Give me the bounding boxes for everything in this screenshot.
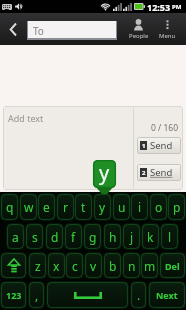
staticText: m <box>144 258 156 274</box>
button[interactable]: f <box>64 222 83 251</box>
button[interactable]: p <box>167 192 186 222</box>
staticText: w <box>24 199 34 215</box>
staticText: . <box>137 287 141 303</box>
button[interactable]: c <box>65 251 84 280</box>
staticText: u <box>118 199 126 215</box>
button[interactable]: r <box>56 192 75 222</box>
button[interactable]: s <box>25 222 44 251</box>
button[interactable]: To <box>27 21 117 40</box>
staticText: h <box>109 229 117 245</box>
staticText: i <box>138 199 142 215</box>
button[interactable]: Add text <box>4 107 133 189</box>
button[interactable]: e <box>37 192 56 222</box>
button[interactable]: h <box>103 222 122 251</box>
staticText: y <box>99 160 110 186</box>
button[interactable]: 1 <box>137 137 181 154</box>
staticText: e <box>43 199 50 215</box>
button[interactable]: x <box>47 251 66 280</box>
staticText: Next <box>156 289 178 301</box>
button[interactable]: d <box>45 222 64 251</box>
staticText: q <box>6 199 14 215</box>
button[interactable]: m <box>140 251 159 280</box>
staticText: Del <box>165 260 180 272</box>
staticText: k <box>147 229 154 245</box>
staticText: 2 <box>142 169 146 177</box>
button[interactable]: Back <box>0 13 26 45</box>
button[interactable]: Del <box>159 251 186 280</box>
staticText: 123 <box>6 289 22 301</box>
staticText: 12:53 <box>147 1 171 13</box>
staticText: Menu <box>159 32 176 40</box>
staticText: t <box>81 199 86 215</box>
staticText: Send <box>150 139 173 152</box>
staticText: PM <box>172 3 182 11</box>
button[interactable]: k <box>141 222 160 251</box>
button[interactable]: g <box>83 222 102 251</box>
staticText: y <box>99 199 106 215</box>
button[interactable]: , <box>28 280 45 310</box>
button[interactable]: u <box>112 192 131 222</box>
button[interactable]: q <box>0 192 19 222</box>
staticText: o <box>155 199 163 215</box>
staticText: j <box>130 229 134 245</box>
staticText: , <box>35 287 39 303</box>
staticText: People <box>129 32 149 40</box>
staticText: v <box>90 258 97 274</box>
button[interactable]: . <box>130 280 147 310</box>
staticText: To <box>33 24 44 38</box>
staticText: 1 <box>142 142 146 150</box>
staticText: r <box>63 199 68 215</box>
button[interactable]: b <box>103 251 122 280</box>
staticText: d <box>51 229 59 245</box>
staticText: c <box>72 258 78 274</box>
button[interactable]: n <box>122 251 141 280</box>
staticText: a <box>12 229 19 245</box>
staticText: Send <box>150 166 173 179</box>
staticText: n <box>128 258 136 274</box>
button[interactable]: 123 <box>0 280 27 310</box>
button[interactable]: v <box>84 251 103 280</box>
staticText: z <box>35 258 41 274</box>
staticText: 0 / 160 <box>151 122 179 134</box>
button[interactable]: z <box>28 251 47 280</box>
staticText: f <box>71 229 76 245</box>
button[interactable]: a <box>6 222 25 251</box>
button[interactable]: People <box>124 13 153 45</box>
staticText: Add text <box>8 112 44 124</box>
button[interactable]: i <box>130 192 149 222</box>
staticText: l <box>168 229 172 245</box>
button[interactable]: o <box>149 192 168 222</box>
button[interactable]: Next <box>148 280 186 310</box>
button[interactable]: j <box>122 222 141 251</box>
button[interactable]: 2 <box>137 164 181 181</box>
button[interactable]: t <box>74 192 93 222</box>
staticText: g <box>89 229 97 245</box>
button[interactable]: Menu <box>153 13 182 45</box>
staticText: p <box>173 199 181 215</box>
button[interactable]: Shift <box>0 251 27 280</box>
button[interactable]: y <box>93 192 112 222</box>
staticText: s <box>32 229 38 245</box>
staticText: x <box>53 258 60 274</box>
button[interactable]: w <box>19 192 38 222</box>
staticText: b <box>109 258 117 274</box>
button[interactable]: Space <box>46 280 129 310</box>
button[interactable]: l <box>160 222 179 251</box>
